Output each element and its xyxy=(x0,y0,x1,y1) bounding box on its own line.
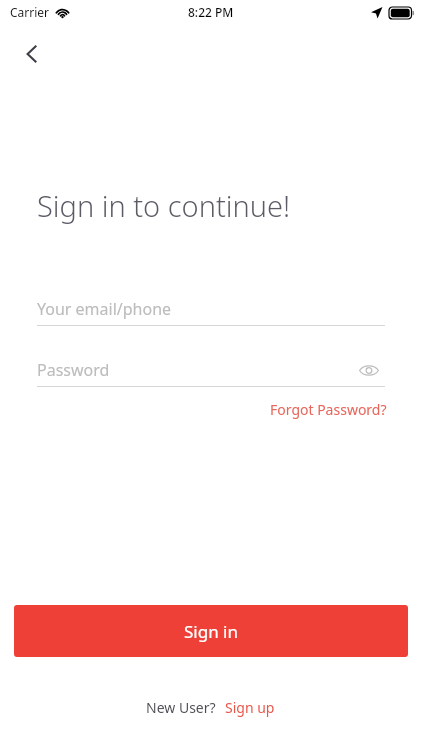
staticText: Sign in xyxy=(184,620,238,643)
button[interactable]: Sign up xyxy=(223,695,277,720)
staticText: Sign up xyxy=(225,698,275,717)
staticText: Forgot Password? xyxy=(270,400,387,419)
staticText: New User? xyxy=(146,698,216,717)
staticText: Carrier xyxy=(10,4,50,20)
button[interactable]: Password xyxy=(37,354,385,386)
button[interactable]: Sign in xyxy=(14,605,408,657)
button[interactable]: Show password xyxy=(353,354,385,386)
button[interactable]: Forgot Password? xyxy=(268,397,389,422)
staticText: Password xyxy=(37,359,110,381)
button[interactable]: Your email/phone xyxy=(37,293,385,325)
staticText: 8:22 PM xyxy=(188,4,234,20)
staticText: Sign in to continue! xyxy=(37,186,291,225)
staticText: Your email/phone xyxy=(37,298,172,320)
button[interactable]: Back xyxy=(10,32,54,76)
